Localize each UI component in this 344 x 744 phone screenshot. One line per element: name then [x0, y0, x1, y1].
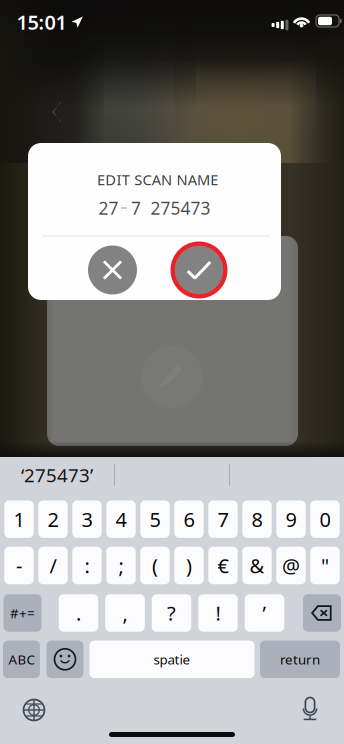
staticText: ,	[122, 600, 127, 626]
staticText: "	[321, 552, 329, 579]
button[interactable]: 3	[72, 500, 102, 538]
staticText: 2	[47, 506, 58, 532]
button[interactable]: !	[198, 594, 238, 632]
staticText: (	[152, 552, 158, 579]
button[interactable]: (	[140, 547, 170, 584]
staticText: 1	[13, 506, 24, 532]
staticText: ?	[167, 600, 176, 626]
staticText: 4	[115, 506, 126, 532]
button[interactable]: 5	[140, 500, 170, 538]
button[interactable]: /	[38, 547, 68, 584]
staticText: 6	[183, 506, 194, 532]
button[interactable]: &	[242, 547, 272, 584]
staticText: ’	[262, 600, 266, 626]
button[interactable]: Confirm	[172, 243, 226, 297]
staticText: spatie	[153, 650, 190, 668]
staticText: -	[16, 552, 22, 579]
staticText: )	[186, 552, 192, 579]
button[interactable]: Delete	[303, 594, 341, 632]
button[interactable]: €	[208, 547, 238, 584]
staticText: ABC	[8, 650, 34, 668]
button[interactable]: .	[59, 594, 98, 632]
button[interactable]: ’	[245, 594, 284, 632]
button[interactable]: 1	[4, 500, 34, 538]
button[interactable]: spatie	[89, 640, 254, 678]
staticText: €	[217, 552, 228, 579]
button[interactable]: 8	[242, 500, 272, 538]
button[interactable]: "	[310, 547, 340, 584]
staticText: &	[249, 552, 264, 579]
button[interactable]: Next keyboard	[12, 688, 56, 732]
button[interactable]: 0	[310, 500, 340, 538]
staticText: 3	[81, 506, 92, 532]
button[interactable]: Dictation	[288, 688, 332, 732]
button[interactable]: 2	[38, 500, 68, 538]
staticText: .	[76, 600, 81, 626]
button[interactable]: ,	[105, 594, 145, 632]
button[interactable]: 6	[174, 500, 204, 538]
staticText: EDIT SCAN NAME	[97, 170, 218, 189]
staticText: /	[49, 552, 56, 579]
staticText: :	[84, 552, 89, 579]
staticText: 7	[131, 196, 141, 219]
button[interactable]: )	[174, 547, 204, 584]
staticText: ;	[118, 552, 123, 579]
staticText: !	[215, 600, 220, 626]
button[interactable]: Emoji keyboard	[46, 640, 83, 678]
staticText: 7	[217, 506, 228, 532]
staticText: 9	[285, 506, 296, 532]
staticText: 5	[149, 506, 160, 532]
button[interactable]: ?	[152, 594, 191, 632]
button[interactable]: -	[4, 547, 34, 584]
staticText: return	[280, 650, 320, 668]
staticText: 0	[319, 506, 330, 532]
staticText: 8	[251, 506, 262, 532]
staticText: ‘275473’	[21, 463, 93, 487]
button[interactable]: ABC	[3, 640, 40, 678]
staticText: 15:01	[16, 9, 66, 35]
button[interactable]: @	[276, 547, 306, 584]
staticText: #+=	[10, 604, 35, 622]
button[interactable]: 9	[276, 500, 306, 538]
button[interactable]: ;	[106, 547, 136, 584]
button[interactable]: :	[72, 547, 102, 584]
button[interactable]: return	[260, 640, 340, 678]
button[interactable]: Cancel	[85, 243, 139, 297]
button[interactable]: 4	[106, 500, 136, 538]
button[interactable]: #+=	[3, 594, 41, 632]
button[interactable]: 7	[208, 500, 238, 538]
staticText: 275473	[150, 196, 210, 219]
staticText: @	[282, 552, 300, 579]
staticText: 27	[98, 196, 118, 219]
